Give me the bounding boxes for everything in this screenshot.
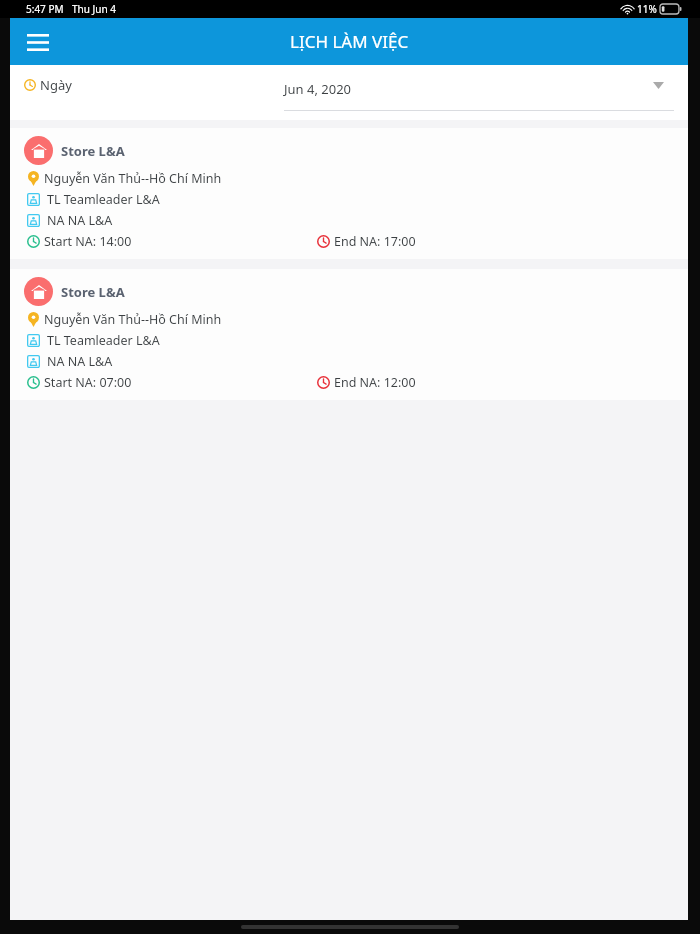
staticText: Nguyễn Văn Thủ--Hồ Chí Minh xyxy=(44,311,222,328)
staticText: Start NA: 07:00 xyxy=(44,374,132,391)
staticText: Ngày xyxy=(40,76,72,94)
staticText: End NA: 12:00 xyxy=(334,374,416,391)
staticText: LỊCH LÀM VIỆC xyxy=(290,30,409,53)
staticText: TL Teamleader L&A xyxy=(47,191,160,208)
button[interactable]: Store L&A xyxy=(10,269,688,400)
staticText: Jun 4, 2020 xyxy=(284,80,352,98)
staticText: 5:47 PM xyxy=(26,2,64,16)
staticText: Store L&A xyxy=(61,142,125,160)
button[interactable]: Store L&A xyxy=(10,128,688,259)
staticText: NA NA L&A xyxy=(47,353,113,370)
staticText: Start NA: 14:00 xyxy=(44,233,132,250)
staticText: NA NA L&A xyxy=(47,212,113,229)
button[interactable]: Open navigation menu xyxy=(18,22,58,62)
staticText: 11% xyxy=(637,2,657,16)
staticText: Thu Jun 4 xyxy=(72,2,116,16)
staticText: Store L&A xyxy=(61,283,125,301)
staticText: Nguyễn Văn Thủ--Hồ Chí Minh xyxy=(44,170,222,187)
staticText: End NA: 17:00 xyxy=(334,233,416,250)
staticText: TL Teamleader L&A xyxy=(47,332,160,349)
button[interactable]: Jun 4, 2020 xyxy=(284,73,674,111)
